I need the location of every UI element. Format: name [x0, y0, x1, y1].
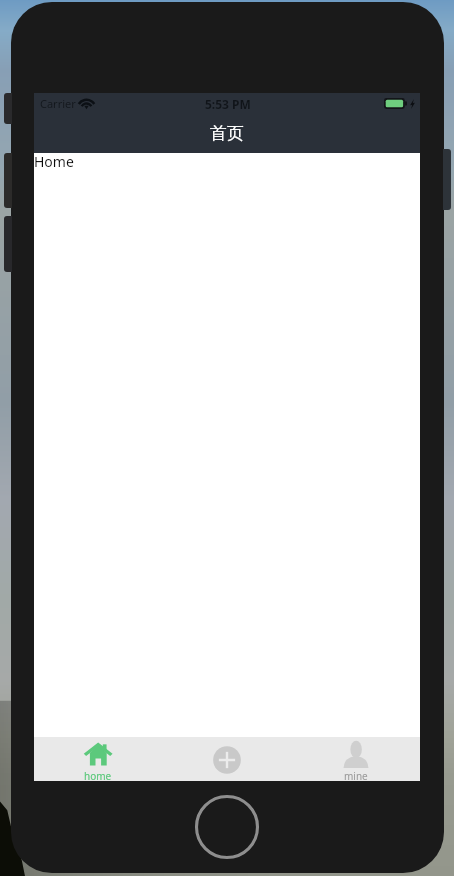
staticText: Carrier — [40, 96, 76, 111]
staticText: home — [84, 769, 112, 783]
staticText: 5:53 PM — [205, 96, 251, 112]
staticText: Home — [34, 152, 74, 171]
staticText: mine — [344, 769, 368, 783]
button[interactable]: home — [34, 737, 162, 781]
button[interactable]: Home button — [194, 794, 260, 860]
button[interactable]: Add — [162, 737, 291, 781]
staticText: 首页 — [210, 123, 244, 144]
button[interactable]: mine — [291, 737, 420, 781]
